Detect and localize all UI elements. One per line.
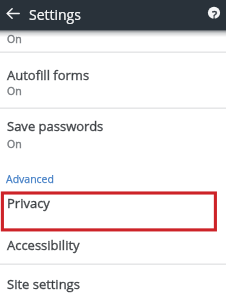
staticText: On (7, 84, 22, 98)
staticText: Accessibility (7, 236, 80, 254)
staticText: Site settings (7, 275, 80, 293)
button[interactable] (0, 264, 226, 300)
button[interactable]: Navigate up (5, 5, 22, 22)
button[interactable] (0, 108, 226, 164)
staticText: Privacy (7, 194, 50, 212)
staticText: On (7, 32, 22, 46)
staticText: Save passwords (7, 117, 104, 135)
staticText: Site settings (7, 275, 80, 293)
staticText: On (7, 137, 22, 151)
staticText: Save passwords (7, 117, 104, 135)
staticText: Autofill forms (7, 66, 90, 84)
staticText: Advanced (6, 172, 54, 186)
staticText: On (7, 84, 22, 98)
button[interactable] (0, 52, 226, 108)
staticText: ? (212, 7, 218, 20)
staticText: ? (212, 7, 218, 20)
button[interactable] (0, 191, 226, 228)
staticText: Accessibility (7, 236, 80, 254)
staticText: Settings (29, 5, 81, 24)
staticText: On (7, 137, 22, 151)
staticText: Autofill forms (7, 66, 90, 84)
staticText: Advanced (6, 172, 54, 186)
button[interactable]: Help and feedback (208, 7, 221, 20)
button[interactable] (0, 228, 226, 264)
staticText: Privacy (7, 194, 50, 212)
button[interactable] (0, 30, 226, 52)
staticText: On (7, 32, 22, 46)
